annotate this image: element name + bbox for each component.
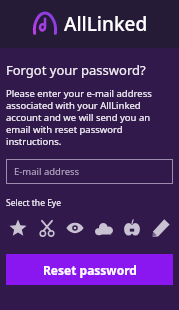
button[interactable]: E-mail address: [6, 159, 173, 184]
button[interactable]: Reset password: [6, 254, 173, 285]
staticText: Forgot your password?: [6, 61, 146, 79]
button[interactable]: Cloud: [92, 216, 116, 240]
button[interactable]: Star: [6, 216, 30, 240]
staticText: E-mail address: [14, 165, 80, 178]
staticText: AllLinked: [64, 11, 148, 37]
button[interactable]: AllLinked: [32, 11, 148, 37]
staticText: Select the Eye: [6, 197, 61, 209]
button[interactable]: Eye: [63, 216, 87, 240]
button[interactable]: Scissors: [35, 216, 59, 240]
button[interactable]: Pencil: [149, 216, 173, 240]
staticText: Reset password: [43, 262, 137, 278]
button[interactable]: Apple: [120, 216, 144, 240]
staticText: Please enter your e-mail address associa…: [6, 87, 173, 148]
